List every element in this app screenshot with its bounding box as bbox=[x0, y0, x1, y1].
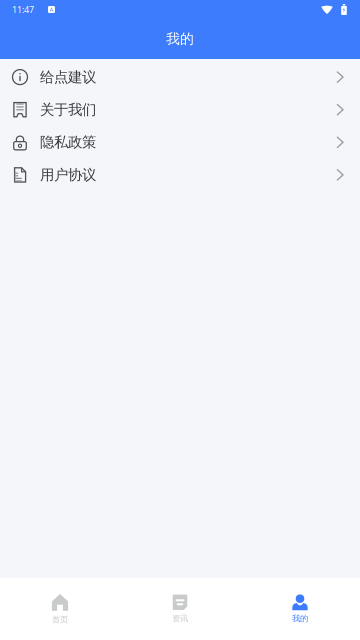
staticText: 我的 bbox=[166, 30, 194, 48]
staticText: 我的 bbox=[292, 613, 308, 624]
staticText: 资讯 bbox=[172, 613, 188, 624]
staticText: 隐私政策 bbox=[40, 133, 96, 151]
staticText: 11:47 bbox=[12, 3, 34, 16]
staticText: A bbox=[49, 5, 53, 14]
button[interactable]: 资讯 bbox=[120, 578, 240, 640]
staticText: 给点建议 bbox=[40, 68, 96, 86]
button[interactable]: 给点建议 bbox=[0, 61, 360, 93]
button[interactable]: 关于我们 bbox=[0, 93, 360, 126]
staticText: 用户协议 bbox=[40, 166, 96, 184]
button[interactable]: 用户协议 bbox=[0, 159, 360, 191]
staticText: 关于我们 bbox=[40, 101, 96, 119]
button[interactable]: 我的 bbox=[240, 578, 360, 640]
button[interactable]: 首页 bbox=[0, 578, 120, 640]
button[interactable]: 隐私政策 bbox=[0, 126, 360, 159]
staticText: 首页 bbox=[52, 614, 68, 625]
